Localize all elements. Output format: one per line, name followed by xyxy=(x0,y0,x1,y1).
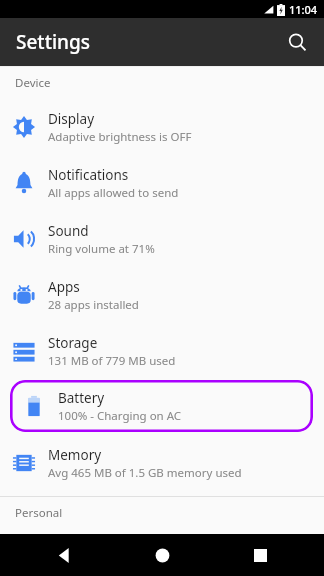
button[interactable]: Apps xyxy=(0,267,324,323)
staticText: 11:04 xyxy=(289,2,318,17)
staticText: Memory xyxy=(48,446,102,464)
staticText: Device xyxy=(15,75,51,91)
button[interactable]: Home xyxy=(144,537,180,573)
staticText: Adaptive brightness is OFF xyxy=(48,129,192,145)
staticText: Apps xyxy=(48,278,80,296)
staticText: Storage xyxy=(48,334,98,352)
button[interactable]: Battery xyxy=(10,380,313,432)
staticText: Ring volume at 71% xyxy=(48,241,155,257)
staticText: Notifications xyxy=(48,166,129,184)
button[interactable]: Back xyxy=(46,537,82,573)
button[interactable]: Notifications xyxy=(0,155,324,211)
staticText: 28 apps installed xyxy=(48,297,139,313)
staticText: All apps allowed to send xyxy=(48,185,179,201)
staticText: Avg 465 MB of 1.5 GB memory used xyxy=(48,465,242,481)
staticText: Display xyxy=(48,110,95,128)
button[interactable]: Memory xyxy=(0,435,324,491)
button[interactable]: Sound xyxy=(0,211,324,267)
staticText: 100% - Charging on AC xyxy=(58,408,182,424)
staticText: Sound xyxy=(48,222,89,240)
button[interactable]: Recents xyxy=(242,537,278,573)
staticText: 131 MB of 779 MB used xyxy=(48,353,176,369)
button[interactable]: Display xyxy=(0,99,324,155)
button[interactable]: Search xyxy=(280,25,314,59)
button[interactable]: Storage xyxy=(0,323,324,379)
staticText: Personal xyxy=(15,505,63,521)
staticText: Settings xyxy=(16,29,90,55)
staticText: Battery xyxy=(58,389,105,407)
